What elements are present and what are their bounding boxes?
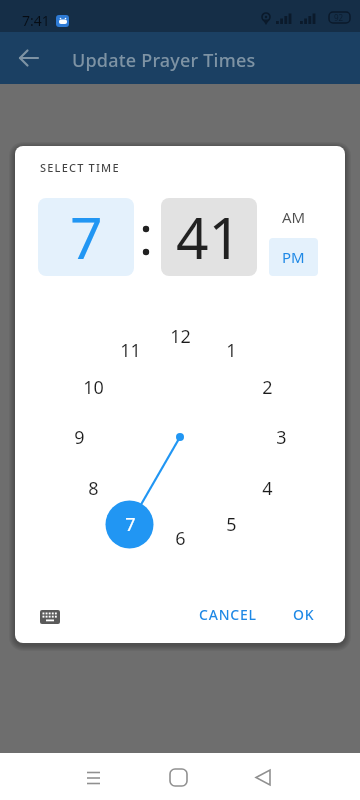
staticText: 7 — [70, 198, 103, 276]
button[interactable] — [28, 597, 72, 637]
staticText: CANCEL — [199, 605, 257, 624]
staticText: 3 — [276, 425, 287, 450]
button[interactable] — [120, 753, 240, 800]
button[interactable]: 5 — [201, 509, 261, 539]
button[interactable]: 3 — [251, 422, 311, 452]
button[interactable]: 9 — [49, 422, 109, 452]
staticText: PM — [282, 247, 305, 267]
staticText: 10 — [83, 375, 104, 400]
button[interactable]: 10 — [63, 372, 123, 402]
staticText: 92 — [334, 12, 344, 23]
button[interactable]: 7 — [38, 198, 134, 276]
staticText: 41 — [176, 198, 242, 276]
button[interactable] — [0, 753, 120, 800]
button[interactable]: 12 — [150, 321, 210, 351]
button[interactable]: PM — [269, 238, 318, 276]
button[interactable] — [240, 753, 360, 800]
button[interactable]: 6 — [150, 523, 210, 553]
staticText: AM — [282, 207, 306, 227]
staticText: 12 — [170, 324, 191, 349]
button[interactable]: AM — [269, 198, 318, 236]
staticText: 11 — [120, 338, 141, 363]
button[interactable]: 41 — [161, 198, 257, 276]
staticText: 2 — [262, 375, 273, 400]
staticText: Update Prayer Times — [72, 48, 256, 73]
staticText: 4 — [262, 476, 273, 501]
button[interactable]: 11 — [100, 335, 160, 365]
button[interactable]: 1 — [201, 335, 261, 365]
button[interactable]: 8 — [63, 473, 123, 503]
button[interactable] — [11, 40, 47, 76]
button[interactable]: OK — [274, 596, 334, 632]
staticText: 5 — [226, 512, 237, 537]
staticText: 7 — [125, 512, 136, 537]
staticText: 6 — [175, 526, 186, 551]
button[interactable]: CANCEL — [183, 596, 273, 632]
staticText: OK — [293, 605, 315, 624]
button[interactable]: 2 — [237, 372, 297, 402]
staticText: 1 — [226, 338, 237, 363]
button[interactable]: 7 — [100, 509, 160, 539]
staticText: SELECT TIME — [40, 160, 120, 175]
staticText: 7:41 — [22, 11, 50, 30]
staticText: 8 — [88, 476, 99, 501]
staticText: 9 — [74, 425, 85, 450]
button[interactable]: 4 — [237, 473, 297, 503]
